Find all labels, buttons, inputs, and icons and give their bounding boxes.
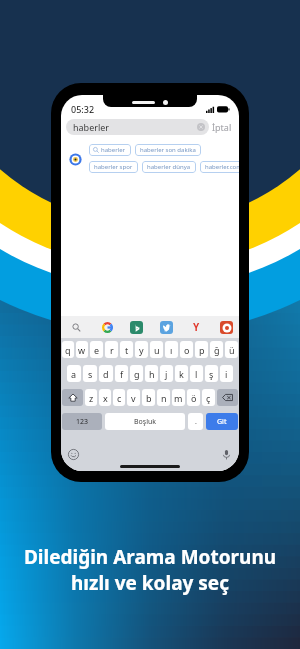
staticText: ç (206, 392, 211, 404)
staticText: p (199, 344, 205, 356)
button[interactable]: k (175, 365, 188, 382)
staticText: u (154, 344, 160, 356)
button[interactable]: r (105, 341, 118, 358)
button[interactable]: o (180, 341, 193, 358)
button[interactable]: haberler (66, 119, 209, 135)
staticText: w (78, 344, 86, 356)
staticText: z (89, 392, 94, 404)
staticText: c (117, 392, 122, 404)
button[interactable]: f (115, 365, 128, 382)
staticText: x (103, 392, 108, 404)
staticText: h (149, 368, 155, 380)
button[interactable]: m (172, 389, 185, 406)
button[interactable]: v (127, 389, 140, 406)
button[interactable]: Dictation (221, 449, 232, 460)
button[interactable]: e (90, 341, 103, 358)
button[interactable]: ç (202, 389, 215, 406)
button[interactable]: q (62, 341, 74, 358)
staticText: ö (191, 392, 197, 404)
staticText: haberler.com (205, 163, 239, 171)
staticText: ü (229, 344, 235, 356)
button[interactable]: p (195, 341, 208, 358)
button[interactable]: Shift (62, 389, 83, 406)
button[interactable]: İptal (209, 121, 235, 133)
button[interactable]: Yandex (189, 320, 203, 334)
button[interactable]: h (145, 365, 158, 382)
button[interactable]: z (85, 389, 97, 406)
staticText: ş (209, 368, 214, 380)
button[interactable]: ü (225, 341, 238, 358)
staticText: Boşluk (134, 417, 157, 427)
staticText: Y (193, 320, 200, 334)
button[interactable]: haberler dünya (142, 161, 196, 173)
staticText: 123 (76, 417, 89, 427)
button[interactable]: ğ (210, 341, 223, 358)
button[interactable]: x (99, 389, 111, 406)
button[interactable]: d (99, 365, 113, 382)
button[interactable]: ş (205, 365, 218, 382)
button[interactable]: s (83, 365, 97, 382)
button[interactable]: Git (206, 413, 238, 430)
button[interactable]: haberler son dakika (135, 144, 201, 156)
button[interactable]: Boşluk (105, 413, 185, 430)
staticText: i (225, 368, 228, 380)
staticText: s (88, 368, 93, 380)
button[interactable]: Google (100, 320, 114, 334)
staticText: j (165, 368, 168, 380)
button[interactable]: i (220, 365, 233, 382)
button[interactable]: ö (187, 389, 200, 406)
staticText: . (195, 417, 197, 427)
staticText: İptal (212, 121, 232, 133)
staticText: r (110, 344, 114, 356)
staticText: o (184, 344, 190, 356)
staticText: f (120, 368, 124, 380)
staticText: y (139, 344, 144, 356)
staticText: a (71, 368, 77, 380)
button[interactable]: y (135, 341, 148, 358)
button[interactable]: Browser (220, 321, 233, 334)
staticText: e (94, 344, 100, 356)
staticText: m (174, 392, 183, 404)
button[interactable]: . (188, 413, 203, 430)
staticText: haberler (101, 146, 126, 154)
button[interactable]: w (76, 341, 88, 358)
button[interactable]: b (142, 389, 155, 406)
staticText: d (103, 368, 109, 380)
staticText: haberler spor (94, 163, 133, 171)
button[interactable]: l (190, 365, 203, 382)
button[interactable]: Backspace (217, 389, 238, 406)
staticText: 05:32 (71, 103, 95, 115)
staticText: n (161, 392, 167, 404)
staticText: g (134, 368, 140, 380)
staticText: b (146, 392, 152, 404)
button[interactable]: Search (70, 321, 83, 334)
button[interactable]: t (120, 341, 133, 358)
button[interactable]: j (160, 365, 173, 382)
staticText: ı (170, 344, 173, 356)
button[interactable]: a (67, 365, 81, 382)
button[interactable]: u (150, 341, 163, 358)
staticText: v (131, 392, 136, 404)
staticText: haberler (73, 121, 110, 133)
button[interactable]: c (113, 389, 125, 406)
staticText: haberler dünya (147, 163, 191, 171)
staticText: Dilediğin Arama Motorunu hızlı ve kolay … (0, 544, 300, 595)
staticText: k (179, 368, 184, 380)
staticText: q (65, 344, 71, 356)
button[interactable]: Emoji (68, 449, 79, 460)
button[interactable]: g (130, 365, 143, 382)
button[interactable]: haberler (89, 144, 131, 156)
button[interactable]: 123 (62, 413, 102, 430)
button[interactable]: Bing (130, 321, 143, 334)
staticText: l (195, 368, 198, 380)
button[interactable]: n (157, 389, 170, 406)
button[interactable]: haberler.com (200, 161, 239, 173)
button[interactable]: haberler spor (89, 161, 138, 173)
staticText: ğ (214, 344, 220, 356)
staticText: Git (217, 417, 227, 427)
button[interactable]: Twitter (160, 321, 173, 334)
staticText: haberler son dakika (140, 146, 196, 154)
staticText: t (125, 344, 129, 356)
button[interactable]: ı (165, 341, 178, 358)
